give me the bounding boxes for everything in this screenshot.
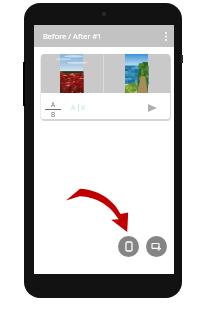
staticText: A [51,100,56,109]
button[interactable]: More options [158,25,174,47]
button[interactable]: A [71,103,86,112]
staticText: B [81,103,86,112]
staticText: A [71,103,76,112]
staticText: Before / After #1 [43,31,102,41]
staticText: B [51,110,56,119]
button[interactable]: Play [142,98,162,118]
button[interactable]: Device preview [118,236,139,257]
button[interactable]: A [45,100,61,119]
button[interactable]: Add comment [146,236,167,257]
